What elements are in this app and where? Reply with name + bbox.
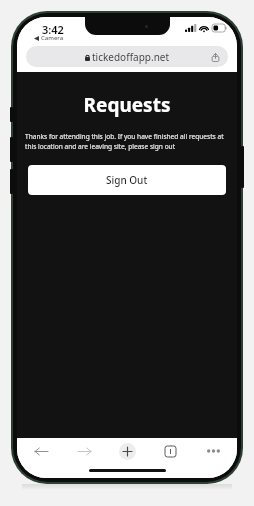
button[interactable]: More xyxy=(200,438,226,464)
button[interactable]: Share xyxy=(209,51,221,63)
button[interactable]: Tabs xyxy=(157,438,183,464)
button[interactable]: Back xyxy=(28,438,54,464)
button[interactable]: tickedoffapp.net xyxy=(26,46,228,67)
staticText: 3:42 xyxy=(42,22,64,37)
staticText: Requests xyxy=(17,92,237,118)
staticText: Thanks for attending this job. If you ha… xyxy=(25,132,229,151)
button[interactable]: Forward xyxy=(71,438,97,464)
button[interactable]: Sign Out xyxy=(28,165,226,195)
button[interactable]: New Tab xyxy=(114,438,140,464)
staticText: Camera xyxy=(41,34,64,42)
staticText: Sign Out xyxy=(106,173,148,187)
staticText: tickedoffapp.net xyxy=(92,50,170,64)
